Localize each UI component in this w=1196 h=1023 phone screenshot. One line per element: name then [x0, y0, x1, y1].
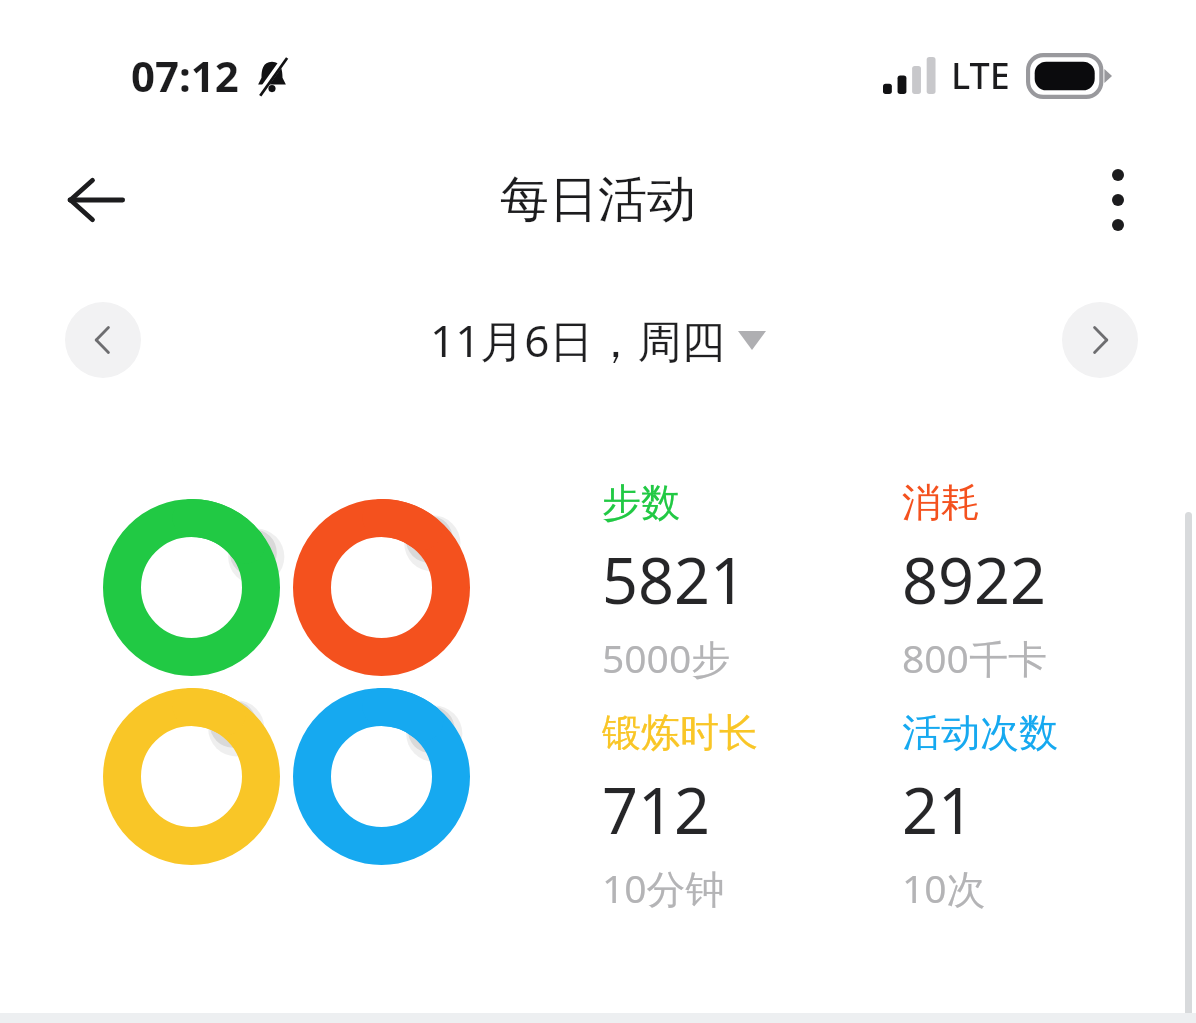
button[interactable]: 锻炼时长 — [602, 708, 902, 914]
button[interactable]: Next day — [1062, 302, 1138, 378]
button[interactable]: 活动次数 — [902, 708, 1192, 914]
staticText: 8922 — [902, 537, 1047, 623]
button[interactable]: 步数 — [602, 478, 902, 684]
staticText: 712 — [602, 767, 711, 853]
button[interactable]: More options — [1070, 152, 1166, 248]
staticText: 每日活动 — [500, 169, 696, 231]
staticText: 10次 — [902, 861, 986, 914]
staticText: 活动次数 — [902, 708, 1058, 757]
staticText: 07:12 — [131, 47, 239, 104]
staticText: 5000步 — [602, 631, 731, 684]
staticText: 锻炼时长 — [602, 708, 758, 757]
button[interactable]: Previous day — [65, 302, 141, 378]
staticText: LTE — [951, 51, 1010, 100]
staticText: 消耗 — [902, 478, 980, 527]
button[interactable]: Back — [48, 152, 144, 248]
staticText: 步数 — [602, 478, 680, 527]
button[interactable]: 11月6日，周四 — [420, 304, 776, 376]
button[interactable]: 消耗 — [902, 478, 1192, 684]
staticText: 5821 — [602, 537, 747, 623]
staticText: 800千卡 — [902, 631, 1047, 684]
staticText: 10分钟 — [602, 861, 725, 914]
staticText: 21 — [902, 767, 975, 853]
staticText: 11月6日，周四 — [430, 310, 726, 370]
